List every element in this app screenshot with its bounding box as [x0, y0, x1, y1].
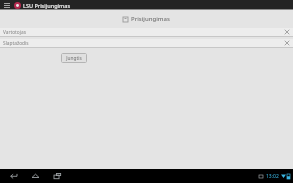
button[interactable]: Clear Slaptažodis — [284, 40, 290, 46]
button[interactable]: Menu — [2, 0, 12, 10]
button[interactable]: Back — [6, 169, 20, 183]
button[interactable]: Jungtis — [61, 53, 87, 63]
button[interactable]: Recent apps — [50, 169, 64, 183]
button[interactable]: Slaptažodis — [0, 39, 293, 47]
staticText: 13:02 — [266, 173, 279, 180]
staticText: Prisijungimas — [131, 15, 170, 23]
staticText: Slaptažodis — [3, 40, 284, 47]
staticText: Jungtis — [66, 55, 82, 62]
staticText: LSU Prisijungimas — [23, 2, 71, 9]
button[interactable]: Home — [28, 169, 42, 183]
staticText: Vartotojas — [3, 29, 284, 36]
button[interactable]: Clear Vartotojas — [284, 29, 290, 35]
button[interactable]: Vartotojas — [0, 28, 293, 36]
